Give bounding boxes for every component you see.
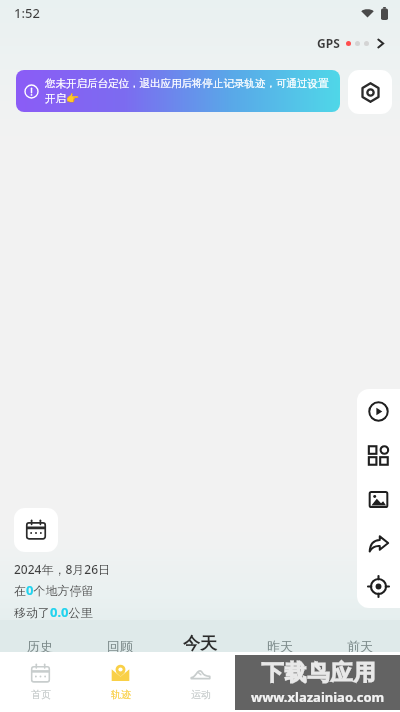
staticText: 1:52 (14, 4, 40, 22)
staticText: 前天 (347, 638, 373, 654)
button[interactable]: Settings (348, 70, 392, 114)
staticText: 运动 (191, 688, 211, 701)
button[interactable]: Photos (357, 477, 400, 521)
staticText: GPS (317, 35, 340, 51)
staticText: 首页 (31, 688, 51, 701)
button[interactable]: 首页 (0, 652, 80, 712)
button[interactable]: 历史 (0, 620, 80, 672)
staticText: 昨天 (267, 638, 293, 654)
staticText: 在0个地方停留 (14, 581, 94, 599)
button[interactable]: Pick date (14, 508, 58, 552)
button[interactable]: 前天 (320, 620, 400, 672)
staticText: www.xlazainiao.com (251, 688, 385, 706)
button[interactable]: 运动 (160, 652, 240, 712)
button[interactable]: 昨天 (240, 620, 320, 672)
staticText: 历史 (27, 638, 53, 654)
button[interactable]: 轨迹 (80, 652, 160, 712)
button[interactable]: 今天 (160, 620, 240, 672)
staticText: 今天 (183, 633, 217, 654)
button[interactable]: GPS (313, 32, 390, 54)
button[interactable]: Share (357, 521, 400, 565)
button[interactable]: Layers (357, 433, 400, 477)
button[interactable]: 回顾 (80, 620, 160, 672)
staticText: 移动了0.0公里 (14, 603, 93, 621)
button[interactable]: Locate (357, 565, 400, 608)
staticText: 轨迹 (111, 688, 131, 701)
staticText: 2024年，8月26日 (14, 561, 111, 577)
staticText: 您未开启后台定位，退出应用后将停止记录轨迹，可通过设置开启👉 (45, 77, 332, 105)
staticText: 下载鸟应用 (261, 659, 376, 687)
button[interactable]: 您未开启后台定位，退出应用后将停止记录轨迹，可通过设置开启👉 (16, 70, 340, 112)
button[interactable]: Play (357, 389, 400, 433)
staticText: 回顾 (107, 638, 133, 654)
